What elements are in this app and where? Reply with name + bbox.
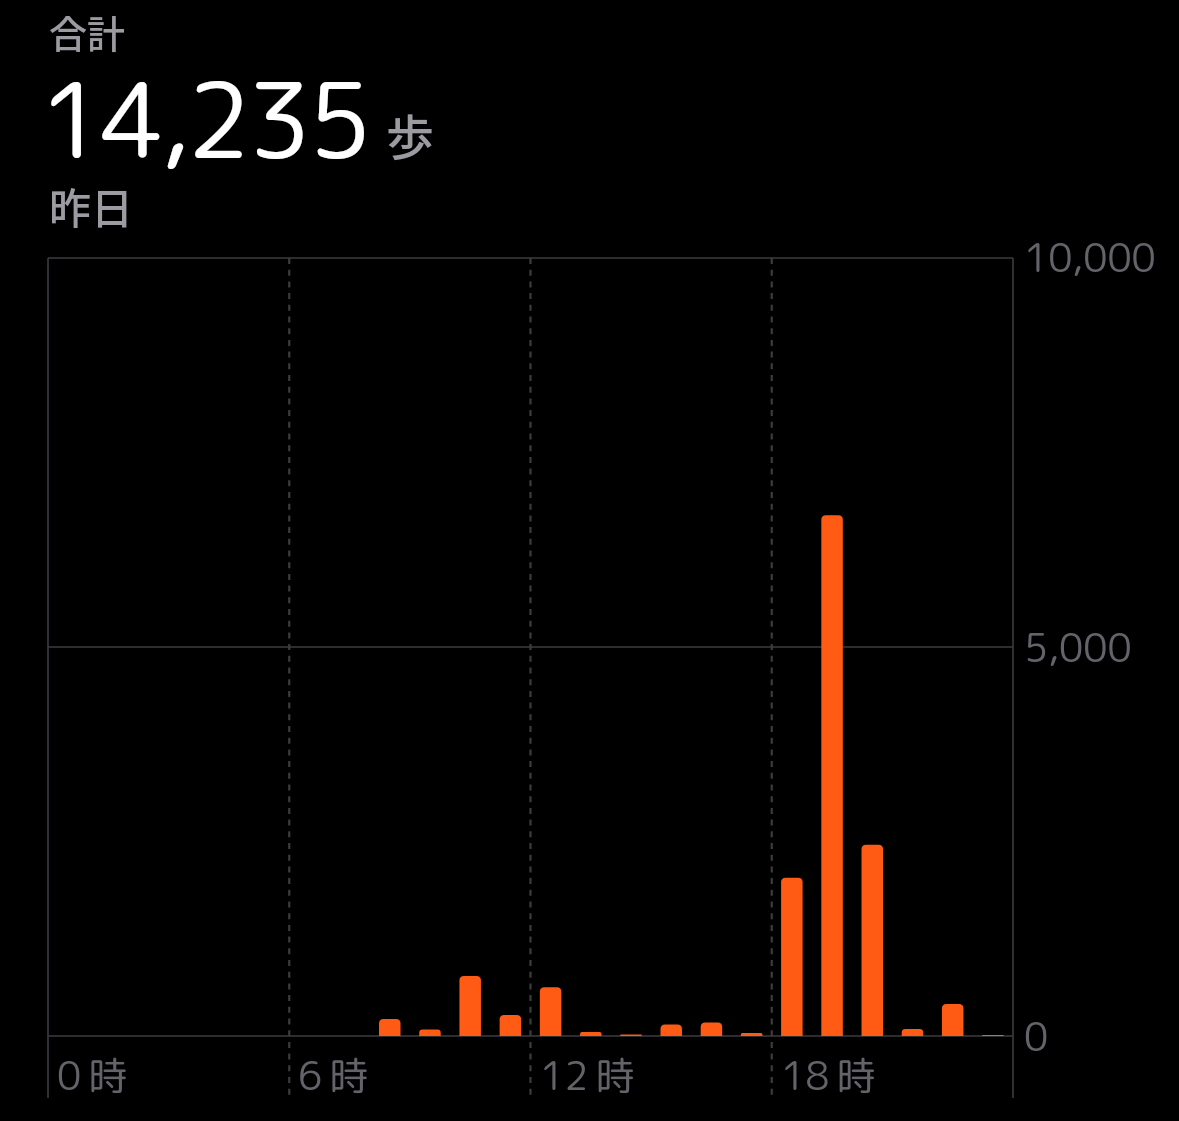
- staticText: 12 時: [540, 1048, 635, 1102]
- staticText: 10,000: [1024, 230, 1156, 284]
- staticText: 14,235: [40, 47, 369, 191]
- button[interactable]: 合計: [40, 0, 460, 236]
- staticText: 18 時: [781, 1048, 876, 1102]
- staticText: 6 時: [298, 1048, 369, 1102]
- button[interactable]: 1 時間ごとの歩数グラフ: [48, 258, 1013, 1036]
- staticText: 0 時: [57, 1048, 128, 1102]
- staticText: 0: [1024, 1009, 1049, 1063]
- staticText: 歩: [386, 99, 435, 169]
- staticText: 昨日: [49, 175, 134, 236]
- staticText: 5,000: [1024, 620, 1132, 674]
- staticText: 合計: [49, 4, 126, 59]
